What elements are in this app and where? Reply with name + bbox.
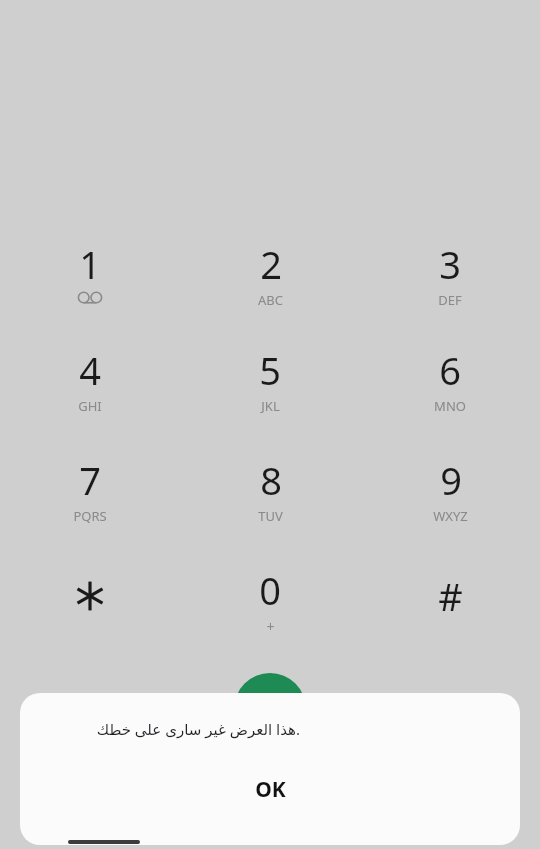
button[interactable]: Dial 7 — [0, 454, 180, 564]
button[interactable]: Dial 5 — [180, 344, 360, 454]
staticText: WXYZ — [433, 507, 468, 525]
button[interactable]: Dial 4 — [0, 344, 180, 454]
staticText: 9 — [440, 454, 462, 506]
button[interactable]: Dial pound — [360, 564, 540, 659]
button[interactable]: Dial 2 — [180, 238, 360, 344]
button[interactable]: Call — [234, 673, 306, 745]
staticText: JKL — [261, 397, 280, 415]
staticText: 6 — [439, 344, 461, 396]
button[interactable]: Dial 9 — [360, 454, 540, 564]
staticText: PQRS — [73, 507, 107, 525]
staticText: MNO — [434, 397, 466, 415]
button[interactable]: Dial star — [0, 564, 180, 659]
staticText: 0 — [259, 564, 281, 616]
staticText: GHI — [78, 397, 102, 415]
staticText: 1 — [79, 238, 101, 290]
button[interactable]: Dial 1 — [0, 238, 180, 344]
staticText: 5 — [259, 344, 281, 396]
staticText: 2 — [260, 238, 282, 290]
staticText: 3 — [439, 238, 461, 290]
button[interactable]: Dial 8 — [180, 454, 360, 564]
staticText: 8 — [260, 454, 282, 506]
button[interactable]: OK — [20, 765, 520, 813]
staticText: + — [266, 617, 275, 636]
staticText: # — [438, 570, 463, 622]
staticText: ABC — [258, 291, 283, 309]
staticText: DEF — [438, 291, 462, 309]
button[interactable]: Dial 0 — [180, 564, 360, 659]
button[interactable]: Dial 6 — [360, 344, 540, 454]
staticText: 4 — [79, 344, 101, 396]
staticText: OK — [255, 775, 286, 804]
staticText: 7 — [79, 454, 101, 506]
staticText: هذا العرض غير سارى على خطك. — [44, 719, 300, 739]
button[interactable]: Dial 3 — [360, 238, 540, 344]
staticText: TUV — [258, 507, 283, 525]
